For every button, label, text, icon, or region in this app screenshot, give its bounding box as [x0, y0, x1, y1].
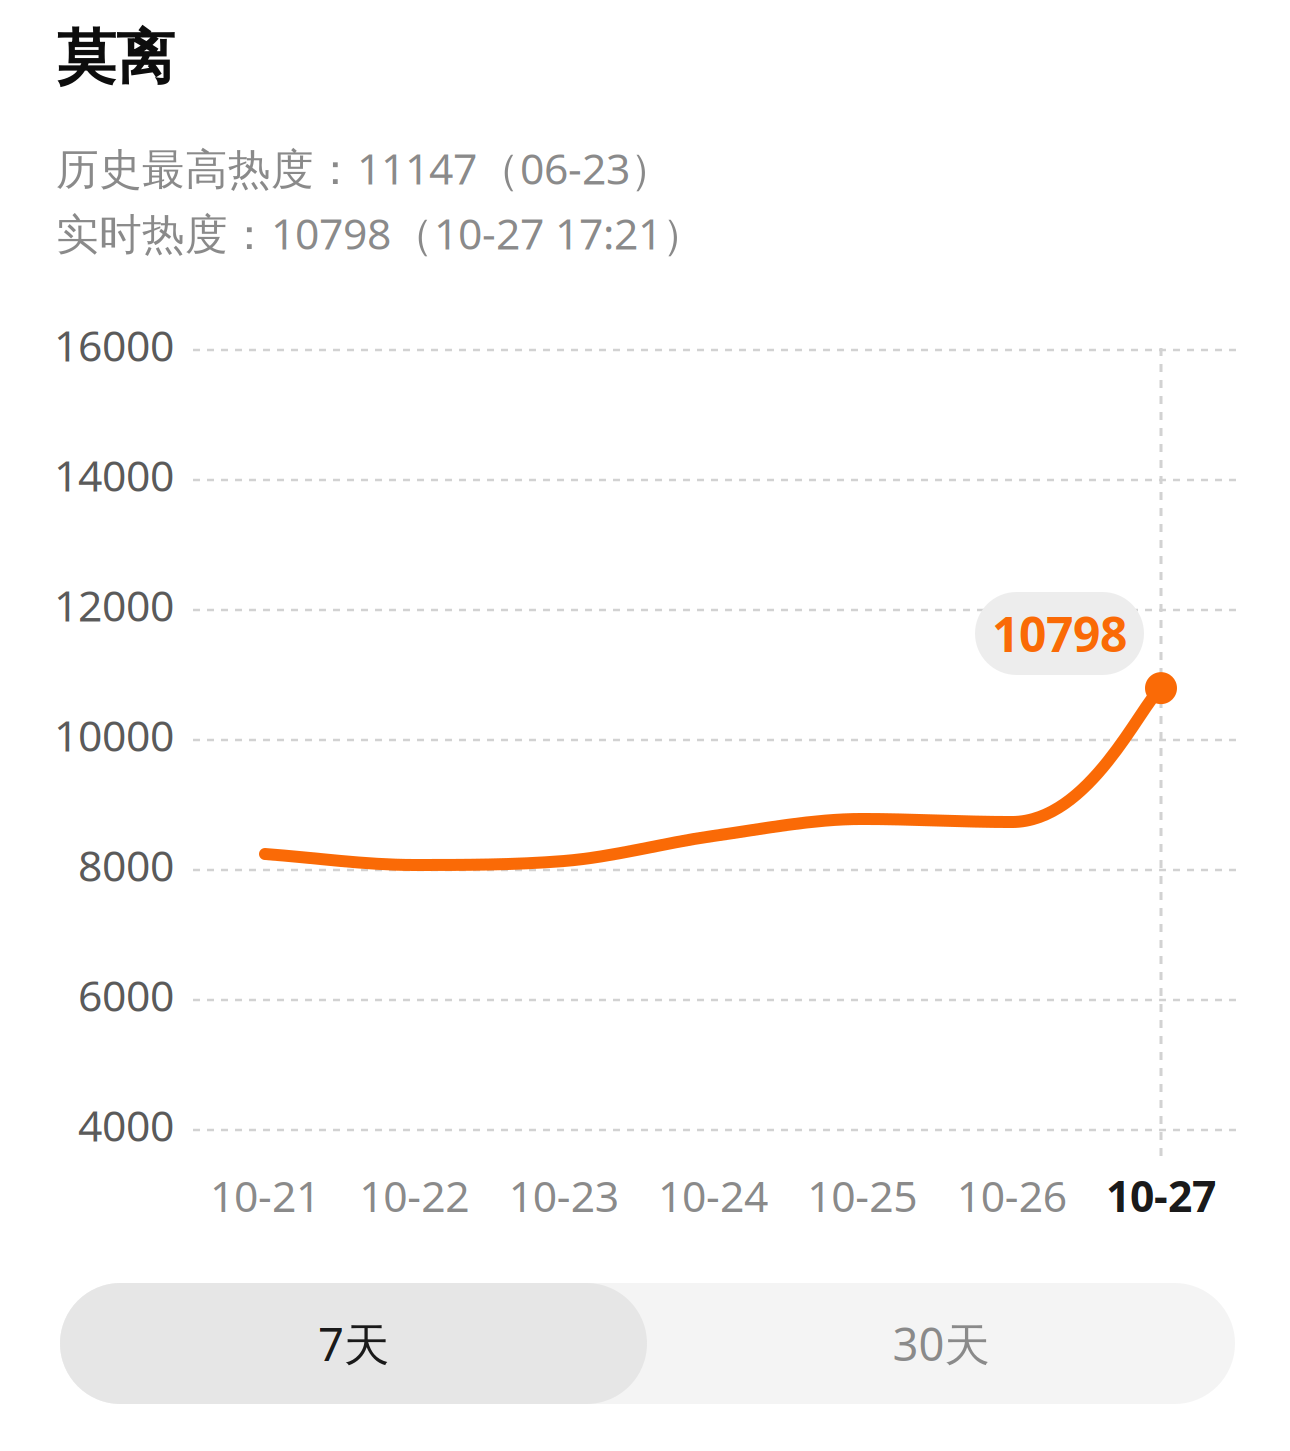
- staticText: 莫离: [57, 22, 175, 94]
- staticText: 30天: [892, 1313, 989, 1374]
- staticText: 历史最高热度：11147（06-23）: [56, 140, 673, 196]
- staticText: 10-21: [210, 1167, 320, 1224]
- staticText: 10-26: [957, 1167, 1067, 1224]
- staticText: 14000: [54, 447, 174, 503]
- staticText: 16000: [54, 317, 174, 373]
- staticText: 10000: [54, 707, 174, 763]
- staticText: 6000: [78, 967, 174, 1023]
- staticText: 10-24: [658, 1167, 768, 1224]
- staticText: 10-27: [1106, 1167, 1216, 1224]
- staticText: 10-22: [359, 1167, 469, 1224]
- button[interactable]: 7天: [60, 1283, 647, 1404]
- staticText: 10-25: [807, 1167, 917, 1224]
- staticText: 7天: [318, 1313, 389, 1374]
- staticText: 8000: [78, 837, 174, 893]
- button[interactable]: 30天: [647, 1283, 1235, 1404]
- staticText: 10-23: [509, 1167, 619, 1224]
- staticText: 12000: [54, 577, 174, 633]
- staticText: 实时热度：10798（10-27 17:21）: [56, 205, 705, 261]
- staticText: 4000: [78, 1097, 174, 1153]
- staticText: 10798: [992, 602, 1127, 665]
